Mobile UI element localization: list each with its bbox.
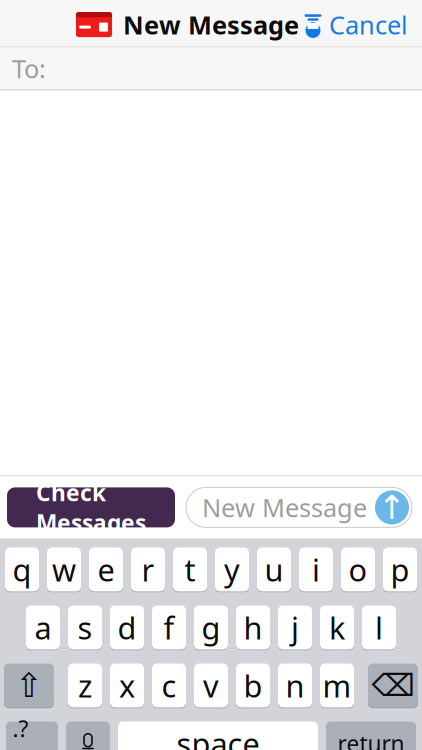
staticText: ⌫ bbox=[371, 668, 414, 703]
button[interactable]: space bbox=[118, 720, 318, 750]
button[interactable]: p bbox=[383, 546, 417, 592]
button[interactable]: ⇧ bbox=[4, 662, 54, 708]
staticText: u bbox=[264, 549, 283, 590]
staticText: space bbox=[176, 723, 259, 750]
staticText: a bbox=[34, 607, 51, 648]
staticText: p bbox=[390, 549, 409, 590]
button[interactable]: v bbox=[194, 662, 228, 708]
staticText: return bbox=[337, 728, 404, 750]
button[interactable]: m bbox=[320, 662, 354, 708]
button[interactable] bbox=[66, 720, 110, 750]
staticText: o bbox=[348, 549, 367, 590]
staticText: t bbox=[184, 549, 195, 590]
button[interactable]: l bbox=[362, 604, 396, 650]
button[interactable]: e bbox=[89, 546, 123, 592]
staticText: l bbox=[375, 607, 383, 648]
button[interactable]: r bbox=[131, 546, 165, 592]
staticText: m bbox=[322, 665, 351, 706]
button[interactable]: g bbox=[194, 604, 228, 650]
staticText: n bbox=[285, 665, 304, 706]
button[interactable]: Cancel bbox=[303, 4, 408, 45]
staticText: b bbox=[243, 665, 262, 706]
button[interactable]: x bbox=[110, 662, 144, 708]
staticText: v bbox=[203, 665, 219, 706]
button[interactable]: return bbox=[326, 720, 416, 750]
button[interactable]: h bbox=[236, 604, 270, 650]
button[interactable]: b bbox=[236, 662, 270, 708]
staticText: ⇧ bbox=[15, 667, 43, 704]
button[interactable]: u bbox=[257, 546, 291, 592]
button[interactable]: a bbox=[26, 604, 60, 650]
staticText: Check Messages bbox=[36, 477, 146, 537]
button[interactable]: Send bbox=[375, 490, 409, 524]
staticText: h bbox=[243, 607, 262, 648]
button[interactable]: d bbox=[110, 604, 144, 650]
staticText: k bbox=[329, 607, 345, 648]
button[interactable]: q bbox=[5, 546, 39, 592]
staticText: To: bbox=[12, 52, 46, 85]
staticText: i bbox=[312, 549, 320, 590]
button[interactable]: t bbox=[173, 546, 207, 592]
button[interactable]: z bbox=[68, 662, 102, 708]
button[interactable]: s bbox=[68, 604, 102, 650]
staticText: y bbox=[224, 549, 240, 590]
button[interactable]: ⌫ bbox=[368, 662, 418, 708]
staticText: j bbox=[291, 607, 299, 648]
staticText: z bbox=[78, 665, 92, 706]
staticText: .?123 bbox=[12, 713, 51, 750]
staticText: c bbox=[161, 665, 176, 706]
button[interactable]: y bbox=[215, 546, 249, 592]
button[interactable]: o bbox=[341, 546, 375, 592]
button[interactable]: .?123 bbox=[6, 720, 58, 750]
button[interactable]: j bbox=[278, 604, 312, 650]
staticText: e bbox=[97, 549, 114, 590]
staticText: s bbox=[77, 607, 92, 648]
button[interactable]: w bbox=[47, 546, 81, 592]
staticText: q bbox=[12, 549, 31, 590]
staticText: Cancel bbox=[329, 8, 408, 41]
staticText: w bbox=[52, 549, 76, 590]
staticText: f bbox=[163, 607, 174, 648]
staticText: d bbox=[117, 607, 136, 648]
staticText: g bbox=[201, 607, 220, 648]
button[interactable]: Check Messages bbox=[7, 487, 175, 527]
button[interactable]: k bbox=[320, 604, 354, 650]
staticText: New Message bbox=[202, 491, 367, 524]
staticText: r bbox=[141, 549, 154, 590]
button[interactable]: Card bbox=[72, 8, 116, 41]
button[interactable]: c bbox=[152, 662, 186, 708]
staticText: New Message bbox=[123, 8, 299, 41]
button[interactable]: n bbox=[278, 662, 312, 708]
staticText: ↑ bbox=[378, 488, 406, 526]
button[interactable]: f bbox=[152, 604, 186, 650]
button[interactable]: i bbox=[299, 546, 333, 592]
staticText: x bbox=[119, 665, 135, 706]
